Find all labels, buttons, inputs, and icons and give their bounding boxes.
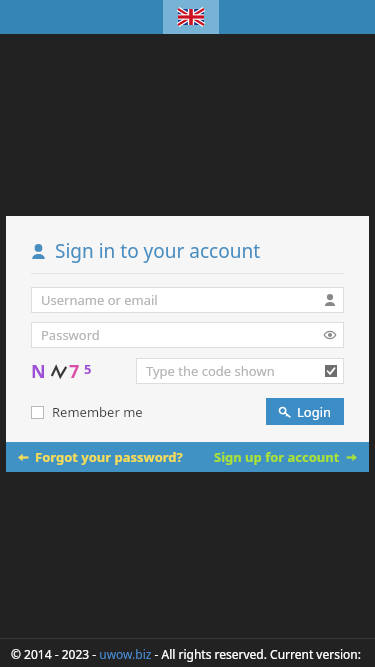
staticText: © 2014 - 2023 - uwow.biz - All rights re… <box>11 646 361 662</box>
button[interactable]: Forgot your password? <box>18 448 183 466</box>
button[interactable]: Login <box>266 398 344 425</box>
staticText: Sign in to your account <box>55 238 261 264</box>
staticText: N <box>31 359 46 384</box>
staticText: Username or email <box>41 291 158 309</box>
staticText: 7 <box>69 359 80 384</box>
button[interactable]: Remember me <box>31 403 143 421</box>
staticText: Forgot your password? <box>35 448 183 466</box>
button[interactable]: Change language <box>163 0 219 34</box>
staticText: Password <box>41 326 100 344</box>
staticText: 5 <box>84 360 92 378</box>
button[interactable]: Password <box>31 322 344 348</box>
staticText: Login <box>297 403 332 421</box>
button[interactable]: Username or email <box>31 287 344 313</box>
staticText: Sign up for account <box>214 448 340 466</box>
staticText: Remember me <box>52 403 143 421</box>
staticText: Type the code shown <box>146 362 275 380</box>
button[interactable]: Sign up for account <box>214 448 357 466</box>
button[interactable]: Type the code shown <box>136 358 344 384</box>
